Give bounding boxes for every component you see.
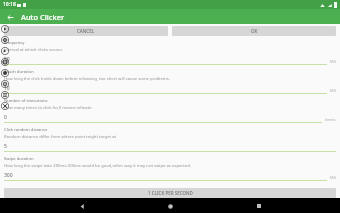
button[interactable]: Swipe duration — [4, 156, 336, 185]
button[interactable]: Back — [4, 11, 16, 23]
button[interactable]: Close — [1, 102, 9, 110]
staticText: MS — [330, 88, 336, 93]
staticText: 300 — [4, 172, 13, 179]
button[interactable]: CANCEL — [4, 26, 168, 36]
staticText: 0 — [4, 114, 7, 121]
staticText: Click random distance — [4, 127, 48, 133]
staticText: Random distance differ from where point … — [4, 134, 116, 140]
button[interactable]: Back — [75, 199, 89, 213]
staticText: Swipe duration — [4, 156, 34, 162]
staticText: Number of executions — [4, 98, 48, 104]
staticText: How many times to click for,0 means infi… — [4, 105, 92, 111]
staticText: 1 CLICK PER SECOND — [148, 190, 193, 196]
button[interactable]: List — [1, 91, 9, 99]
button[interactable]: Home — [163, 199, 177, 213]
staticText: MS — [330, 59, 336, 64]
button[interactable]: Frequency — [4, 40, 336, 69]
button[interactable]: Swipe — [1, 47, 9, 55]
staticText: times — [325, 117, 336, 122]
staticText: 10 — [4, 85, 10, 92]
staticText: 10:18 — [3, 1, 16, 8]
staticText: 5 — [4, 143, 7, 150]
button[interactable]: OK — [172, 26, 336, 36]
staticText: 50 — [4, 56, 10, 63]
button[interactable]: Play — [1, 25, 9, 33]
button[interactable]: Click random distance — [4, 127, 336, 156]
button[interactable]: Target — [1, 36, 9, 44]
staticText: CANCEL — [77, 28, 95, 34]
button[interactable]: Number of executions — [4, 98, 336, 127]
staticText: MS — [330, 175, 336, 180]
button[interactable]: More — [1, 80, 9, 88]
button[interactable]: Touch duration — [4, 69, 336, 98]
button[interactable]: Settings — [1, 58, 9, 66]
button[interactable]: Record — [1, 69, 9, 77]
staticText: Frequency — [4, 40, 25, 46]
staticText: interval at which clicks occour — [4, 47, 63, 53]
button[interactable]: Recents — [252, 199, 266, 213]
button[interactable]: 1 CLICK PER SECOND — [4, 188, 336, 198]
staticText: Touch duration — [4, 69, 34, 75]
staticText: OK — [251, 28, 258, 34]
staticText: Auto Clicker — [21, 12, 65, 22]
staticText: How long the click holds down before rel… — [4, 76, 170, 82]
staticText: How long the swipe take 200ms-500ms woul… — [4, 163, 191, 169]
